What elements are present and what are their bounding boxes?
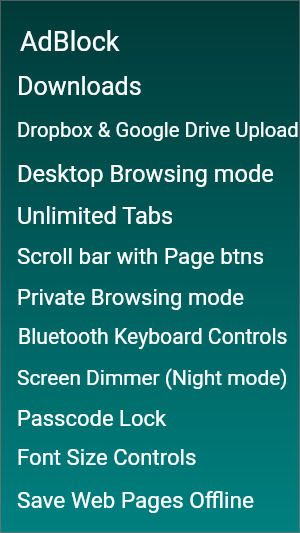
staticText: Scroll bar with Page btns [17,243,264,269]
button[interactable]: Scroll bar with Page btns [0,243,300,269]
button[interactable]: Bluetooth Keyboard Controls [0,324,300,349]
staticText: AdBlock [20,26,120,58]
button[interactable]: Dropbox & Google Drive Upload [0,118,300,142]
button[interactable]: Desktop Browsing mode [0,160,300,188]
staticText: Dropbox & Google Drive Upload [17,118,299,142]
staticText: Bluetooth Keyboard Controls [18,324,288,349]
button[interactable]: AdBlock [0,26,300,58]
staticText: Downloads [17,72,142,101]
staticText: Passcode Lock [17,406,167,432]
staticText: Save Web Pages Offline [17,487,255,513]
button[interactable]: Passcode Lock [0,406,300,432]
staticText: Screen Dimmer (Night mode) [17,366,288,390]
staticText: Unlimited Tabs [17,202,174,230]
staticText: Private Browsing mode [17,284,245,310]
button[interactable]: Save Web Pages Offline [0,487,300,513]
staticText: Font Size Controls [17,444,197,470]
button[interactable]: Unlimited Tabs [0,202,300,230]
button[interactable]: Downloads [0,72,300,101]
staticText: Desktop Browsing mode [17,160,274,188]
button[interactable]: Screen Dimmer (Night mode) [0,366,300,390]
button[interactable]: Font Size Controls [0,444,300,470]
button[interactable]: Private Browsing mode [0,284,300,310]
